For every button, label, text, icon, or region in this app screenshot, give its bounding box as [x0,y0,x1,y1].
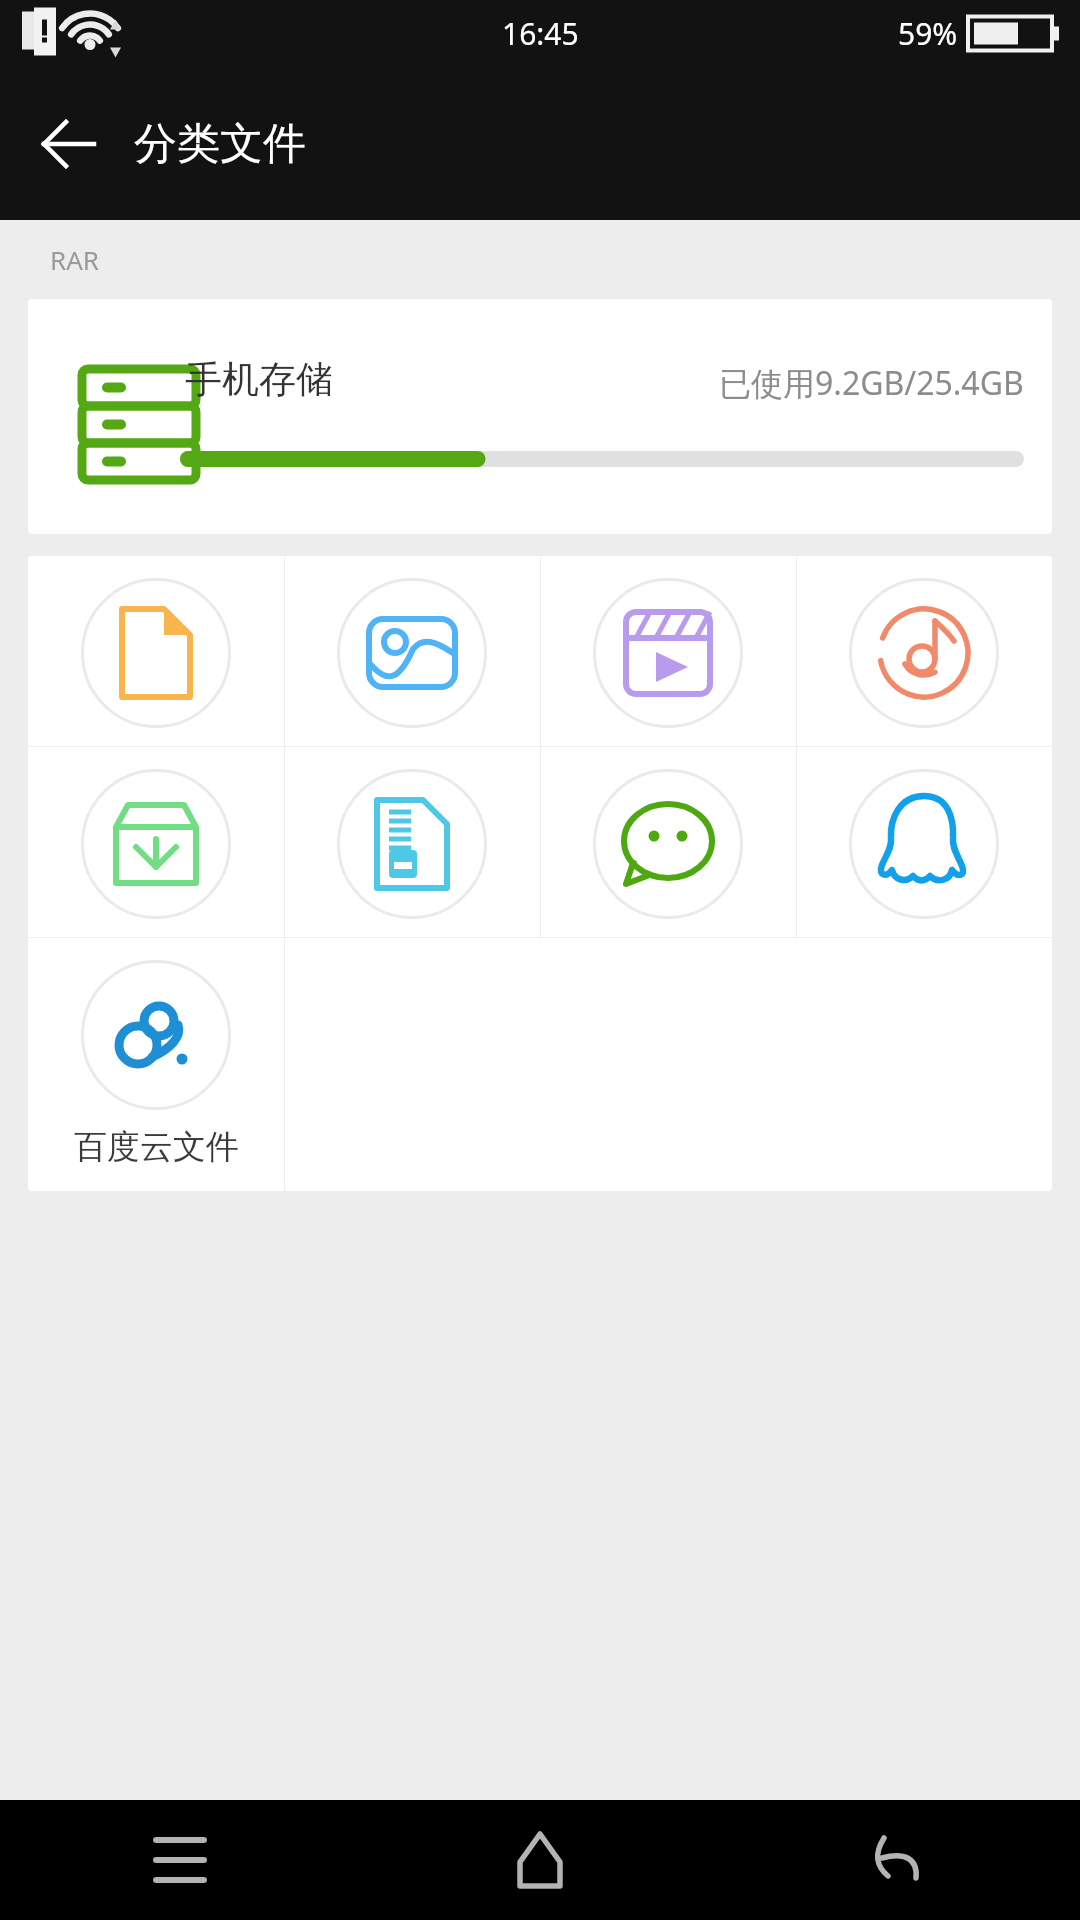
button[interactable]: 安装包 [28,747,284,937]
button[interactable]: QQ文件 [796,747,1052,937]
button[interactable]: Menu [0,1800,360,1920]
button[interactable]: 音频 [796,556,1052,746]
button[interactable]: Back [720,1800,1080,1920]
staticText: 已使用9.2GB/25.4GB [719,361,1024,405]
button[interactable]: 视频 [540,556,796,746]
button[interactable]: 百度云文件 [28,938,284,1191]
button[interactable]: Back [32,108,104,180]
staticText: RAR [50,242,99,277]
button[interactable]: 文档 [28,556,284,746]
button[interactable]: 微信文件 [540,747,796,937]
button[interactable]: 压缩包 [284,747,540,937]
staticText: 分类文件 [134,117,306,171]
button[interactable]: Home [360,1800,720,1920]
staticText: 百度云文件 [74,1126,239,1168]
button[interactable]: 手机存储 [28,299,1052,534]
staticText: 59% [898,13,958,54]
staticText: 16:45 [502,13,579,54]
button[interactable]: 图片 [284,556,540,746]
staticText: 手机存储 [185,356,333,403]
